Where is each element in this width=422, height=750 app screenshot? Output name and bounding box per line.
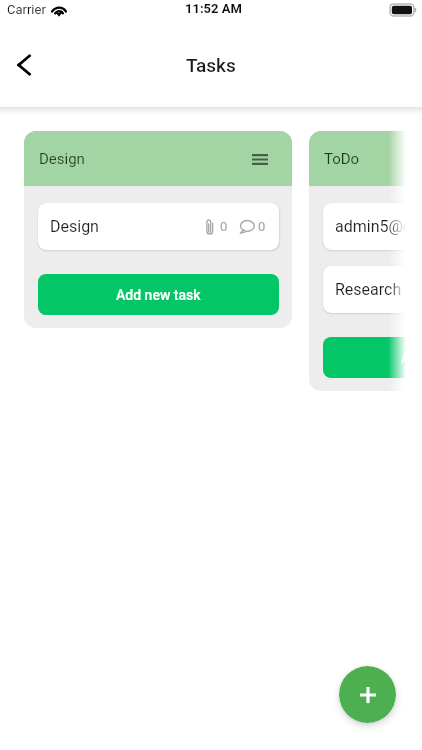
- staticText: Carrier: [7, 2, 46, 17]
- staticText: 0: [220, 219, 228, 234]
- button[interactable]: Back: [2, 43, 46, 87]
- staticText: Add new task: [116, 287, 201, 303]
- button[interactable]: Column menu: [245, 144, 275, 174]
- staticText: Tasks: [186, 54, 236, 76]
- button[interactable]: Add new task: [38, 274, 279, 315]
- button[interactable]: Add new task: [323, 337, 422, 378]
- button[interactable]: admin5@example.com: [323, 203, 422, 250]
- staticText: admin5@example.com: [335, 217, 422, 236]
- button[interactable]: Research: [323, 266, 422, 313]
- staticText: 11:52 AM: [185, 1, 242, 16]
- staticText: Design: [39, 150, 85, 168]
- button[interactable]: ToDo: [309, 131, 422, 186]
- staticText: Add new task: [401, 350, 422, 366]
- staticText: ToDo: [324, 150, 360, 168]
- staticText: Research: [335, 280, 402, 299]
- button[interactable]: Add: [339, 666, 396, 723]
- staticText: 0: [258, 219, 266, 234]
- staticText: Design: [50, 217, 99, 236]
- button[interactable]: Design: [24, 131, 292, 186]
- button[interactable]: Design: [38, 203, 279, 250]
